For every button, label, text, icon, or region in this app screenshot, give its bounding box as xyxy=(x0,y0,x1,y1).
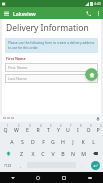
button[interactable]: X xyxy=(27,147,38,159)
staticText: J xyxy=(72,138,74,145)
staticText: Q xyxy=(3,126,8,133)
staticText: N xyxy=(71,150,75,157)
staticText: K xyxy=(81,138,85,145)
button[interactable]: W xyxy=(11,123,22,135)
staticText: B xyxy=(61,150,65,157)
button[interactable]: M xyxy=(78,147,88,159)
button[interactable]: J xyxy=(68,135,78,147)
button[interactable]: P xyxy=(93,123,103,135)
staticText: Delivery Information xyxy=(6,22,89,34)
button[interactable]: Home xyxy=(25,172,51,183)
staticText: X xyxy=(31,150,35,157)
button[interactable]: Z xyxy=(16,147,27,159)
button[interactable]: Backspace xyxy=(88,147,103,159)
button[interactable]: K xyxy=(78,135,88,147)
staticText: . xyxy=(81,163,83,168)
button[interactable]: Enter xyxy=(91,161,100,170)
staticText: Z xyxy=(20,150,23,157)
button[interactable]: C xyxy=(38,147,48,159)
button[interactable]: I xyxy=(73,123,83,135)
button[interactable]: Y xyxy=(53,123,63,135)
button[interactable]: B xyxy=(58,147,68,159)
staticText: L xyxy=(92,138,95,145)
staticText: R xyxy=(36,126,40,133)
staticText: T xyxy=(47,126,50,133)
staticText: H xyxy=(61,138,65,145)
staticText: F xyxy=(42,138,45,145)
staticText: 3 xyxy=(29,124,31,128)
staticText: , xyxy=(20,163,22,168)
button[interactable]: S xyxy=(17,135,28,147)
staticText: Last Name xyxy=(8,76,28,81)
button[interactable]: Shift xyxy=(0,147,16,159)
button[interactable]: E xyxy=(22,123,33,135)
staticText: 6 xyxy=(60,124,62,128)
button[interactable]: Comma xyxy=(16,159,26,171)
staticText: O xyxy=(86,126,91,133)
staticText: 4:45 xyxy=(94,1,101,6)
staticText: G xyxy=(51,138,55,145)
staticText: S xyxy=(21,138,24,145)
button[interactable]: First Name xyxy=(5,63,98,72)
staticText: First Name xyxy=(6,56,26,61)
button[interactable]: Q xyxy=(0,123,11,135)
button[interactable]: Call xyxy=(83,8,94,19)
staticText: 2 xyxy=(18,124,20,128)
button[interactable]: U xyxy=(63,123,73,135)
button[interactable]: ?123 xyxy=(0,159,16,171)
staticText: W xyxy=(14,126,19,133)
staticText: 1 xyxy=(7,124,9,128)
staticText: P xyxy=(96,126,100,133)
button[interactable]: Keyboard switcher xyxy=(77,172,103,183)
staticText: 7 xyxy=(70,124,72,128)
button[interactable]: V xyxy=(48,147,58,159)
staticText: A xyxy=(10,138,14,145)
staticText: First Name xyxy=(8,65,28,70)
staticText: 5 xyxy=(50,124,52,128)
button[interactable]: More options xyxy=(94,9,103,18)
button[interactable]: H xyxy=(58,135,68,147)
staticText: M xyxy=(81,150,86,157)
staticText: D xyxy=(31,138,35,145)
button[interactable]: R xyxy=(33,123,43,135)
button[interactable]: G xyxy=(48,135,58,147)
staticText: ?123 xyxy=(4,163,12,168)
staticText: C xyxy=(41,150,45,157)
button[interactable]: O xyxy=(83,123,93,135)
staticText: 4 xyxy=(40,124,42,128)
staticText: Lakeview xyxy=(13,10,36,17)
staticText: Please use the following form to create … xyxy=(8,41,95,50)
staticText: 8 xyxy=(80,124,82,128)
button[interactable]: N xyxy=(68,147,78,159)
button[interactable]: Last Name xyxy=(5,74,98,83)
staticText: Y xyxy=(57,126,60,133)
button[interactable]: L xyxy=(88,135,98,147)
button[interactable]: T xyxy=(43,123,53,135)
button[interactable]: D xyxy=(28,135,38,147)
button[interactable]: Back xyxy=(0,172,25,183)
staticText: E xyxy=(26,126,29,133)
staticText: I xyxy=(77,126,79,133)
staticText: 9 xyxy=(90,124,92,128)
staticText: 0 xyxy=(100,124,102,128)
button[interactable]: Voice input xyxy=(94,115,101,122)
staticText: U xyxy=(66,126,70,133)
button[interactable]: F xyxy=(38,135,48,147)
button[interactable]: A xyxy=(6,135,17,147)
button[interactable]: Open navigation menu xyxy=(2,9,11,18)
button[interactable]: Recent apps xyxy=(51,172,77,183)
button[interactable]: Add address xyxy=(85,68,98,81)
staticText: V xyxy=(51,150,55,157)
